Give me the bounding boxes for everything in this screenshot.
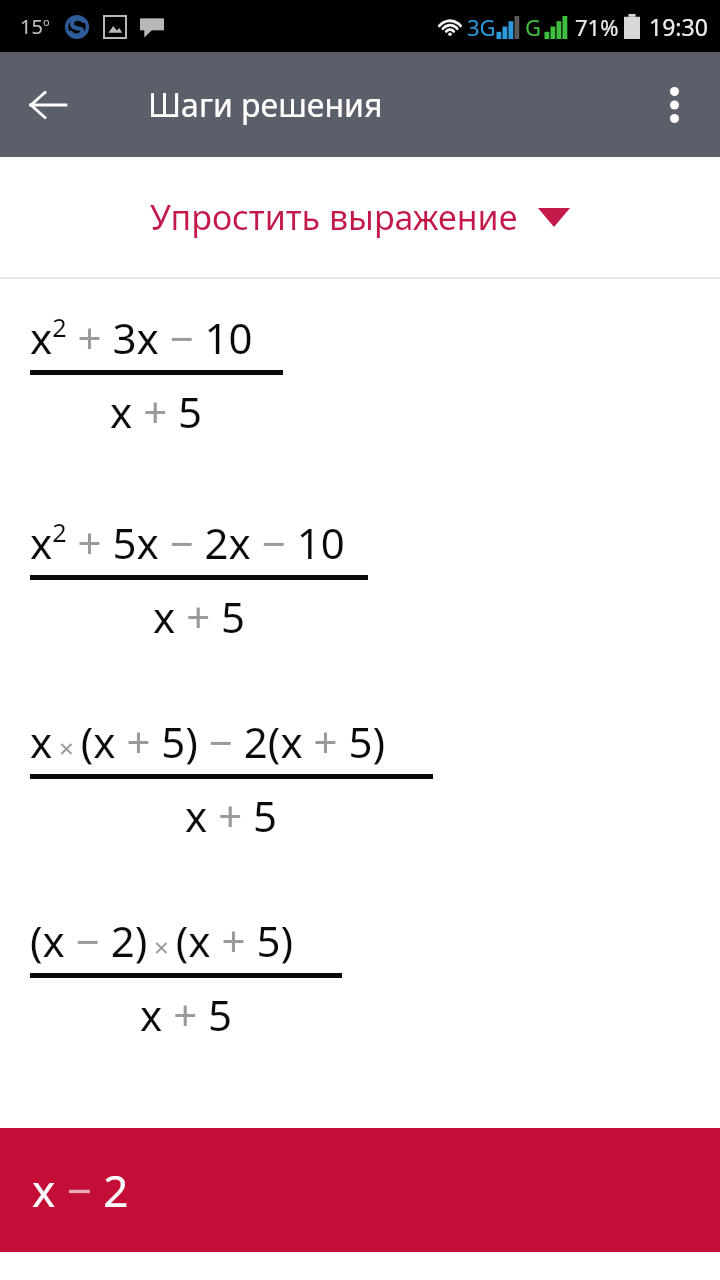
staticText: Шаги решения [148, 83, 383, 127]
staticText: x2 + 3x − 10 [30, 309, 253, 366]
button[interactable]: Упростить выражение [0, 157, 720, 277]
button[interactable]: Back [16, 73, 80, 137]
staticText: (x − 2) × (x + 5) [30, 912, 294, 969]
staticText: x × (x + 5) − 2(x + 5) [30, 713, 386, 770]
staticText: x − 2 [32, 1160, 129, 1220]
staticText: x + 5 [153, 588, 246, 645]
button[interactable]: x − 2 [0, 1128, 720, 1252]
staticText: 3G [467, 12, 496, 42]
staticText: 71% [575, 12, 619, 42]
staticText: x2 + 5x − 2x − 10 [30, 514, 345, 571]
button[interactable]: More options [642, 73, 706, 137]
staticText: G [525, 12, 542, 42]
staticText: x + 5 [140, 986, 233, 1043]
staticText: x + 5 [110, 383, 203, 440]
staticText: 19:30 [649, 11, 708, 42]
staticText: Упростить выражение [150, 194, 518, 240]
staticText: x + 5 [185, 787, 278, 844]
staticText: 15o [20, 13, 50, 40]
